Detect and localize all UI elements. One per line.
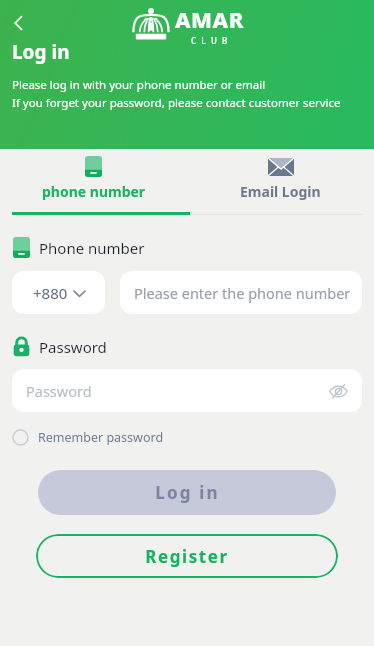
button[interactable]: +880 — [12, 271, 105, 314]
button[interactable]: Please enter the phone number — [120, 271, 362, 314]
staticText: Email Login — [240, 182, 321, 201]
staticText: Please enter the phone number — [134, 283, 351, 303]
staticText: AMAR — [175, 4, 244, 34]
button[interactable]: Remember password — [12, 429, 164, 446]
staticText: Log in — [12, 39, 70, 65]
staticText: C L U B — [191, 35, 229, 46]
staticText: Log in — [155, 481, 220, 504]
staticText: If you forget your password, please cont… — [12, 95, 341, 111]
button[interactable]: Show password — [324, 377, 352, 405]
button[interactable]: Register — [36, 534, 338, 578]
staticText: Password — [39, 337, 107, 357]
staticText: Please log in with your phone number or … — [12, 77, 266, 93]
button[interactable]: phone number — [0, 149, 187, 215]
staticText: +880 — [33, 283, 68, 303]
button[interactable]: Back — [2, 6, 36, 40]
staticText: Phone number — [39, 238, 145, 258]
staticText: Remember password — [38, 429, 164, 446]
staticText: Register — [145, 545, 229, 568]
staticText: phone number — [42, 182, 146, 201]
button[interactable]: Log in — [38, 470, 336, 515]
button[interactable]: Password — [12, 369, 362, 412]
button[interactable]: Email Login — [187, 149, 374, 215]
staticText: Password — [26, 381, 92, 401]
